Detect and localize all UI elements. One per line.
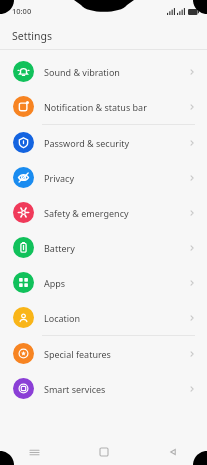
staticText: Settings	[12, 29, 52, 43]
button[interactable]: Password & security	[0, 125, 207, 160]
button[interactable]: Sound & vibration	[0, 54, 207, 89]
button[interactable]: Smart services	[0, 371, 207, 406]
button[interactable]: Location	[0, 300, 207, 335]
staticText: Safety & emergency	[44, 207, 188, 219]
staticText: Privacy	[44, 172, 188, 184]
staticText: Location	[44, 312, 188, 324]
staticText: Password & security	[44, 137, 188, 149]
button[interactable]: Safety & emergency	[0, 195, 207, 230]
staticText: Special features	[44, 348, 188, 360]
button[interactable]: Battery	[0, 230, 207, 265]
staticText: Notification & status bar	[44, 101, 188, 113]
staticText: Sound & vibration	[44, 66, 188, 78]
staticText: 10:00	[12, 6, 32, 16]
button[interactable]: Notification & status bar	[0, 89, 207, 124]
staticText: Battery	[44, 242, 188, 254]
staticText: Smart services	[44, 383, 188, 395]
button[interactable]: Home	[69, 439, 138, 465]
button[interactable]: Back	[138, 439, 207, 465]
button[interactable]: Apps	[0, 265, 207, 300]
button[interactable]: Recent apps	[0, 439, 69, 465]
button[interactable]: Special features	[0, 336, 207, 371]
button[interactable]: Privacy	[0, 160, 207, 195]
staticText: Apps	[44, 277, 188, 289]
